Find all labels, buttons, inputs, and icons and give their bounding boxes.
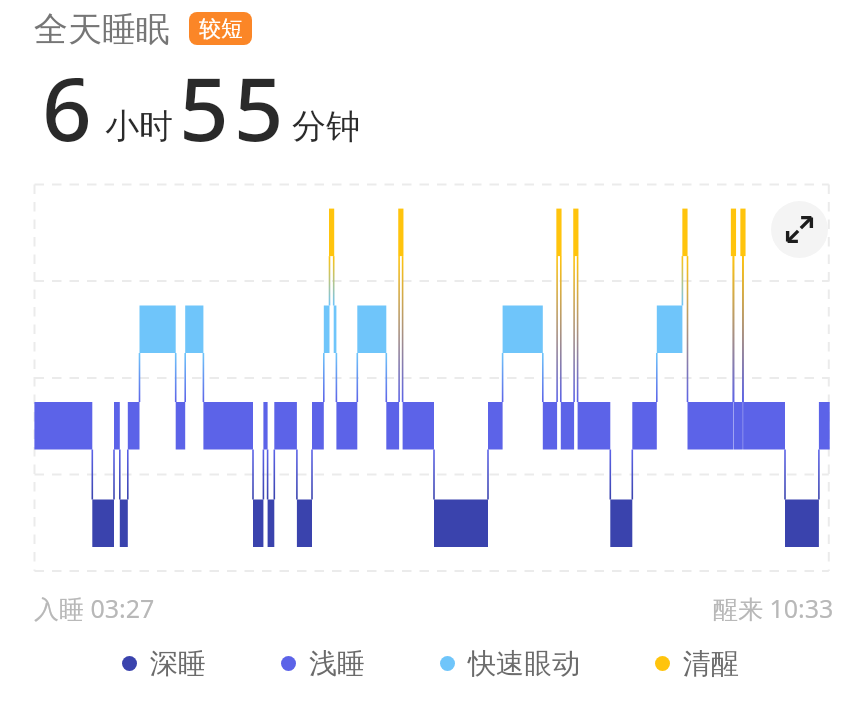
staticText: 55: [179, 48, 289, 166]
button[interactable]: 浅睡: [281, 646, 365, 681]
button[interactable]: 清醒: [655, 646, 739, 681]
staticText: 深睡: [150, 646, 206, 681]
staticText: 小时: [105, 105, 173, 148]
staticText: 浅睡: [309, 646, 365, 681]
button[interactable]: 较短: [189, 12, 252, 45]
staticText: 醒来 10:33: [713, 591, 834, 625]
staticText: 全天睡眠: [34, 8, 170, 51]
staticText: 入睡 03:27: [34, 591, 155, 625]
staticText: 较短: [199, 15, 243, 43]
button[interactable]: Expand sleep chart: [771, 201, 828, 258]
button[interactable]: 快速眼动: [440, 646, 580, 681]
staticText: 清醒: [683, 646, 739, 681]
staticText: 6: [42, 48, 92, 166]
staticText: 快速眼动: [468, 646, 580, 681]
staticText: 分钟: [292, 105, 360, 148]
button[interactable]: 深睡: [122, 646, 206, 681]
